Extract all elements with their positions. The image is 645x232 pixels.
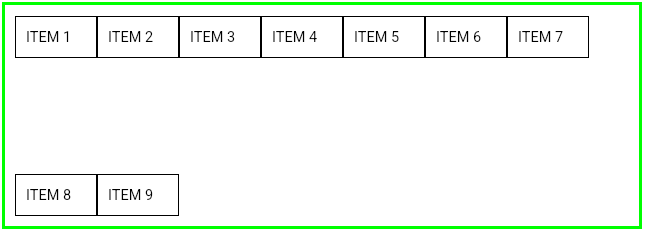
button[interactable]: ITEM 2	[97, 16, 179, 58]
button[interactable]: ITEM 8	[15, 174, 97, 216]
button[interactable]: ITEM 5	[343, 16, 425, 58]
staticText: ITEM 5	[354, 29, 400, 46]
button[interactable]: ITEM 3	[179, 16, 261, 58]
staticText: ITEM 7	[518, 29, 564, 46]
staticText: ITEM 8	[26, 187, 72, 204]
button[interactable]: ITEM 6	[425, 16, 507, 58]
staticText: ITEM 9	[108, 187, 154, 204]
button[interactable]: ITEM 4	[261, 16, 343, 58]
staticText: ITEM 4	[272, 29, 318, 46]
staticText: ITEM 6	[436, 29, 482, 46]
staticText: ITEM 1	[26, 29, 72, 46]
button[interactable]: ITEM 1	[15, 16, 97, 58]
staticText: ITEM 3	[190, 29, 236, 46]
staticText: ITEM 2	[108, 29, 154, 46]
button[interactable]: ITEM 9	[97, 174, 179, 216]
button[interactable]: ITEM 7	[507, 16, 589, 58]
